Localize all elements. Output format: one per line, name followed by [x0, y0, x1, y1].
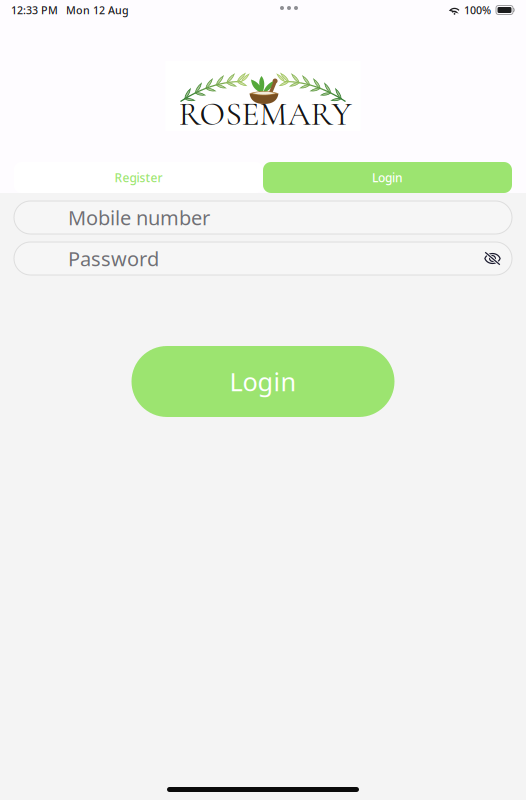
- staticText: Mon 12 Aug: [66, 3, 129, 17]
- button[interactable]: Login: [263, 162, 512, 193]
- staticText: Register: [114, 169, 162, 185]
- staticText: Password: [68, 245, 159, 272]
- staticText: 12:33 PM: [11, 3, 58, 17]
- button[interactable]: Show password: [484, 243, 512, 273]
- staticText: 100%: [464, 3, 491, 17]
- staticText: Login: [229, 365, 296, 398]
- staticText: Mobile number: [68, 204, 210, 231]
- staticText: ROSEMARY: [178, 94, 351, 134]
- staticText: Login: [372, 169, 403, 185]
- button[interactable]: Login: [131, 346, 394, 417]
- button[interactable]: Register: [14, 162, 263, 193]
